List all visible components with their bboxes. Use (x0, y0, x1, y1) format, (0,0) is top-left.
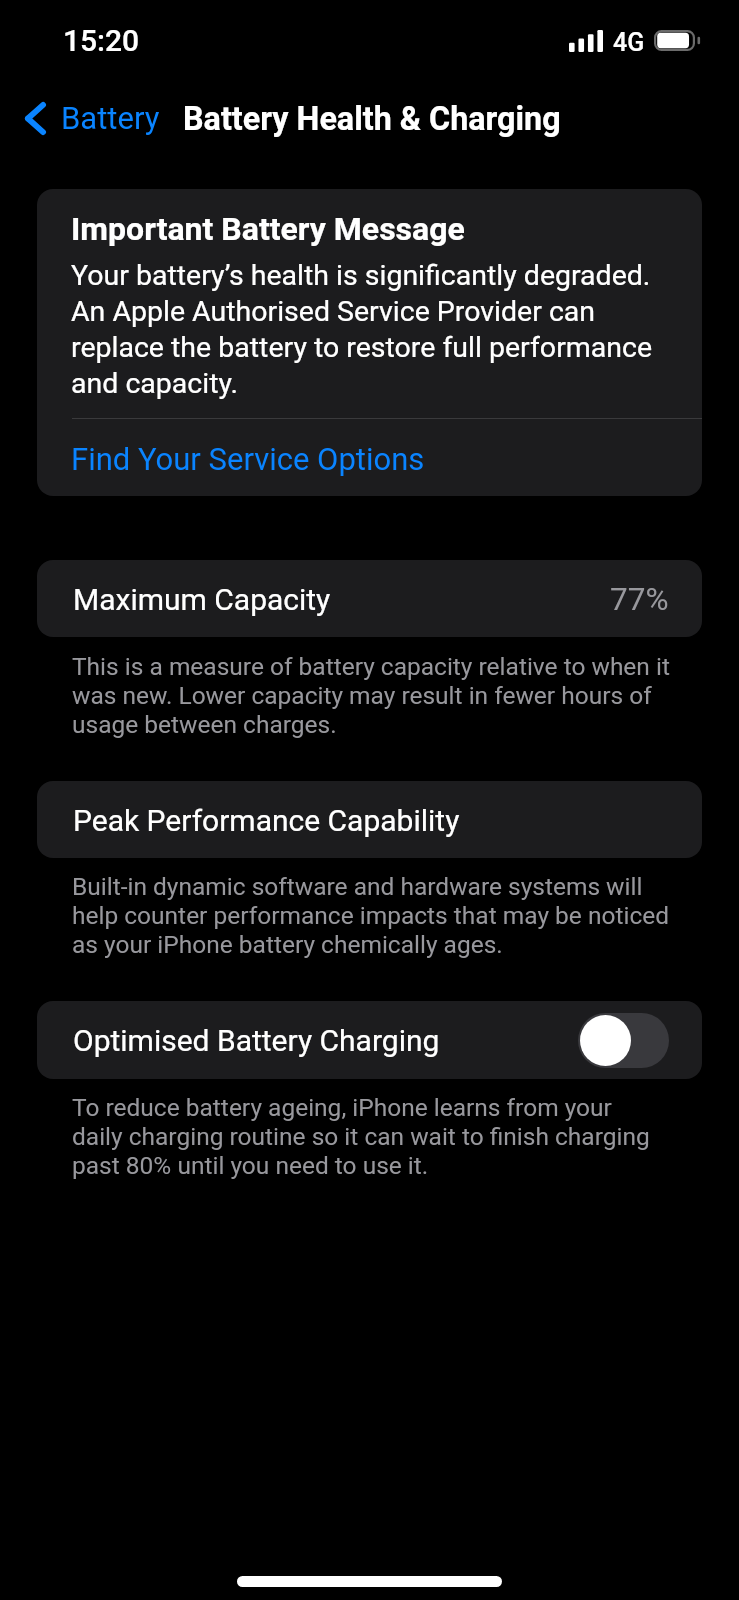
staticText: 15:20 (63, 23, 140, 58)
staticText: Peak Performance Capability (73, 802, 460, 838)
staticText: 77% (610, 581, 669, 617)
staticText: Battery Health & Charging (183, 100, 561, 138)
staticText: Battery (61, 100, 160, 136)
button[interactable]: Maximum Capacity (37, 560, 702, 637)
staticText: Find Your Service Options (71, 441, 425, 477)
staticText: Optimised Battery Charging (73, 1022, 440, 1058)
button[interactable]: Find Your Service Options (37, 419, 702, 496)
staticText: Built-in dynamic software and hardware s… (72, 872, 682, 959)
button[interactable]: Optimised Battery Charging (37, 1001, 702, 1079)
staticText: To reduce battery ageing, iPhone learns … (72, 1093, 682, 1180)
staticText: 4G (613, 28, 645, 57)
staticText: Maximum Capacity (73, 581, 331, 617)
staticText: This is a measure of battery capacity re… (72, 652, 682, 739)
button[interactable]: Peak Performance Capability (37, 781, 702, 858)
staticText: Important Battery Message (71, 210, 465, 248)
button[interactable]: Back to Battery (16, 94, 172, 142)
staticText: Your battery’s health is significantly d… (71, 257, 672, 401)
button[interactable]: Optimised Battery Charging toggle, off (578, 1013, 669, 1068)
